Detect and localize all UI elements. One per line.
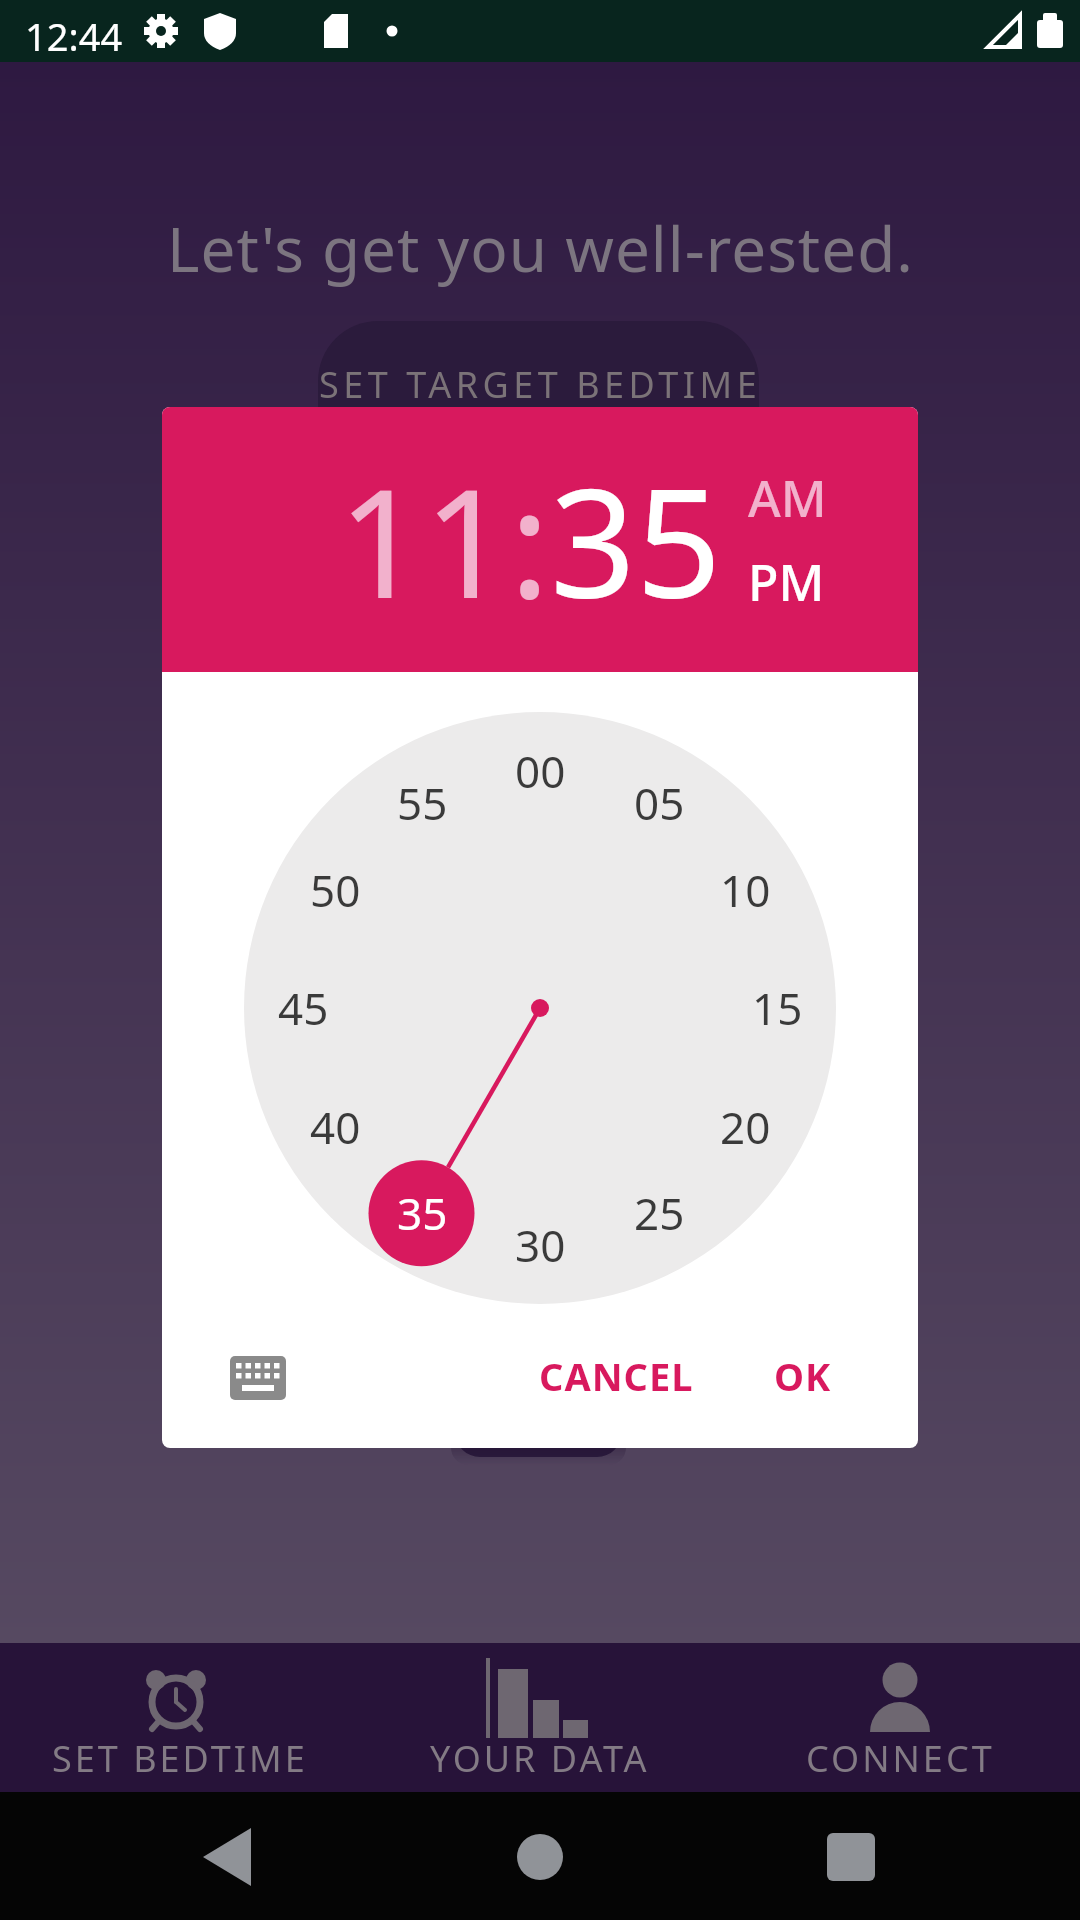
staticText: YOUR DATA — [430, 1734, 650, 1783]
staticText: 11: — [338, 438, 550, 642]
staticText: 45 — [278, 978, 329, 1038]
staticText: 25 — [634, 1183, 685, 1243]
staticText: 12:44 — [25, 10, 123, 62]
staticText: 20 — [720, 1097, 771, 1157]
staticText: 40 — [310, 1097, 361, 1157]
staticText: 35 — [550, 438, 722, 642]
staticText: AM — [748, 464, 827, 532]
staticText: SET TARGET BEDTIME — [319, 360, 762, 409]
staticText: 55 — [397, 773, 448, 833]
staticText: 30 — [515, 1215, 566, 1275]
staticText: PM — [748, 548, 825, 616]
staticText: CONNECT — [806, 1734, 995, 1783]
staticText: 05 — [634, 773, 685, 833]
staticText: 15 — [752, 978, 803, 1038]
staticText: 10 — [720, 860, 771, 920]
staticText: OK — [774, 1350, 832, 1402]
staticText: SET BEDTIME — [52, 1734, 308, 1783]
staticText: Let's get you well-rested. — [167, 206, 914, 290]
staticText: 00 — [515, 741, 566, 801]
staticText: 50 — [310, 860, 361, 920]
staticText: CANCEL — [539, 1350, 694, 1402]
staticText: 35 — [397, 1183, 448, 1243]
